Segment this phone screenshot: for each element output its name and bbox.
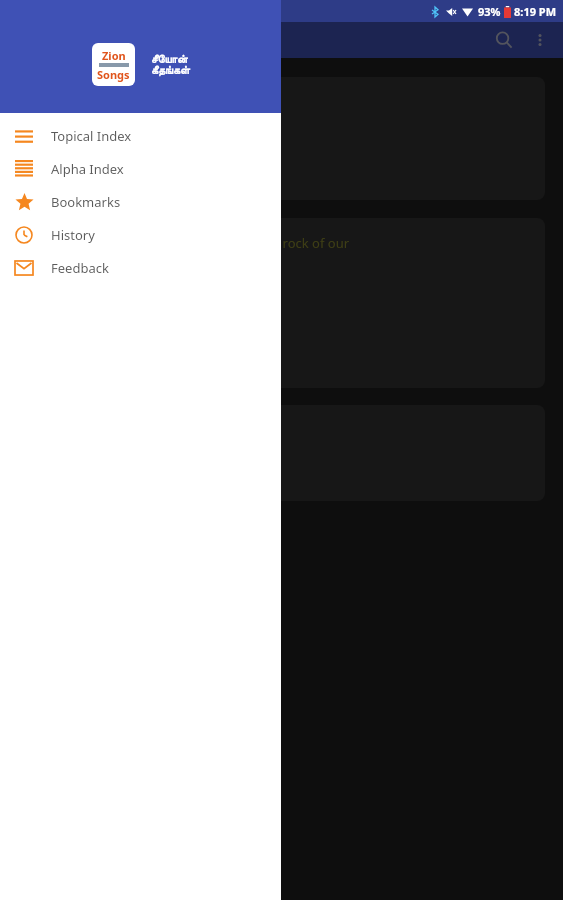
staticText: 8:19 PM <box>514 4 557 19</box>
staticText: Songs <box>97 67 130 82</box>
button[interactable]: ZION SONGS INDIA <box>18 77 545 200</box>
button[interactable]: Topical Index <box>0 119 281 152</box>
staticText: கீதங்கள் <box>151 65 190 76</box>
button[interactable]: O come, let us make a joyful noise to th… <box>18 218 545 388</box>
button[interactable] <box>0 22 563 900</box>
staticText: Topical Index <box>51 127 132 145</box>
staticText: TAMIL WORSHIP SONGS <box>32 121 180 139</box>
staticText: Alpha Index <box>51 160 124 178</box>
staticText: Bookmarks <box>51 193 121 211</box>
button[interactable]: Search <box>487 23 521 57</box>
button[interactable]: Alpha Index <box>0 152 281 185</box>
button[interactable]: Bookmarks <box>0 185 281 218</box>
button[interactable]: More options <box>525 25 555 55</box>
staticText: O come, let us make a joyful noise to th… <box>32 234 350 252</box>
button[interactable]: JEHOVAH SHAMMAH <box>18 405 545 501</box>
staticText: Feedback <box>51 259 109 277</box>
button[interactable]: Feedback <box>0 251 281 284</box>
staticText: Psalm 95:1 <box>32 270 99 288</box>
staticText: History <box>51 226 95 244</box>
staticText: Zion <box>102 48 126 63</box>
staticText: சீயோன் <box>151 54 188 65</box>
staticText: 93% <box>478 4 501 19</box>
staticText: ZION SONGS INDIA <box>32 99 151 117</box>
button[interactable]: History <box>0 218 281 251</box>
staticText: தமிழ் ஆராதனை கீதங்கள் <box>32 155 162 171</box>
staticText: salvation. <box>32 252 91 270</box>
